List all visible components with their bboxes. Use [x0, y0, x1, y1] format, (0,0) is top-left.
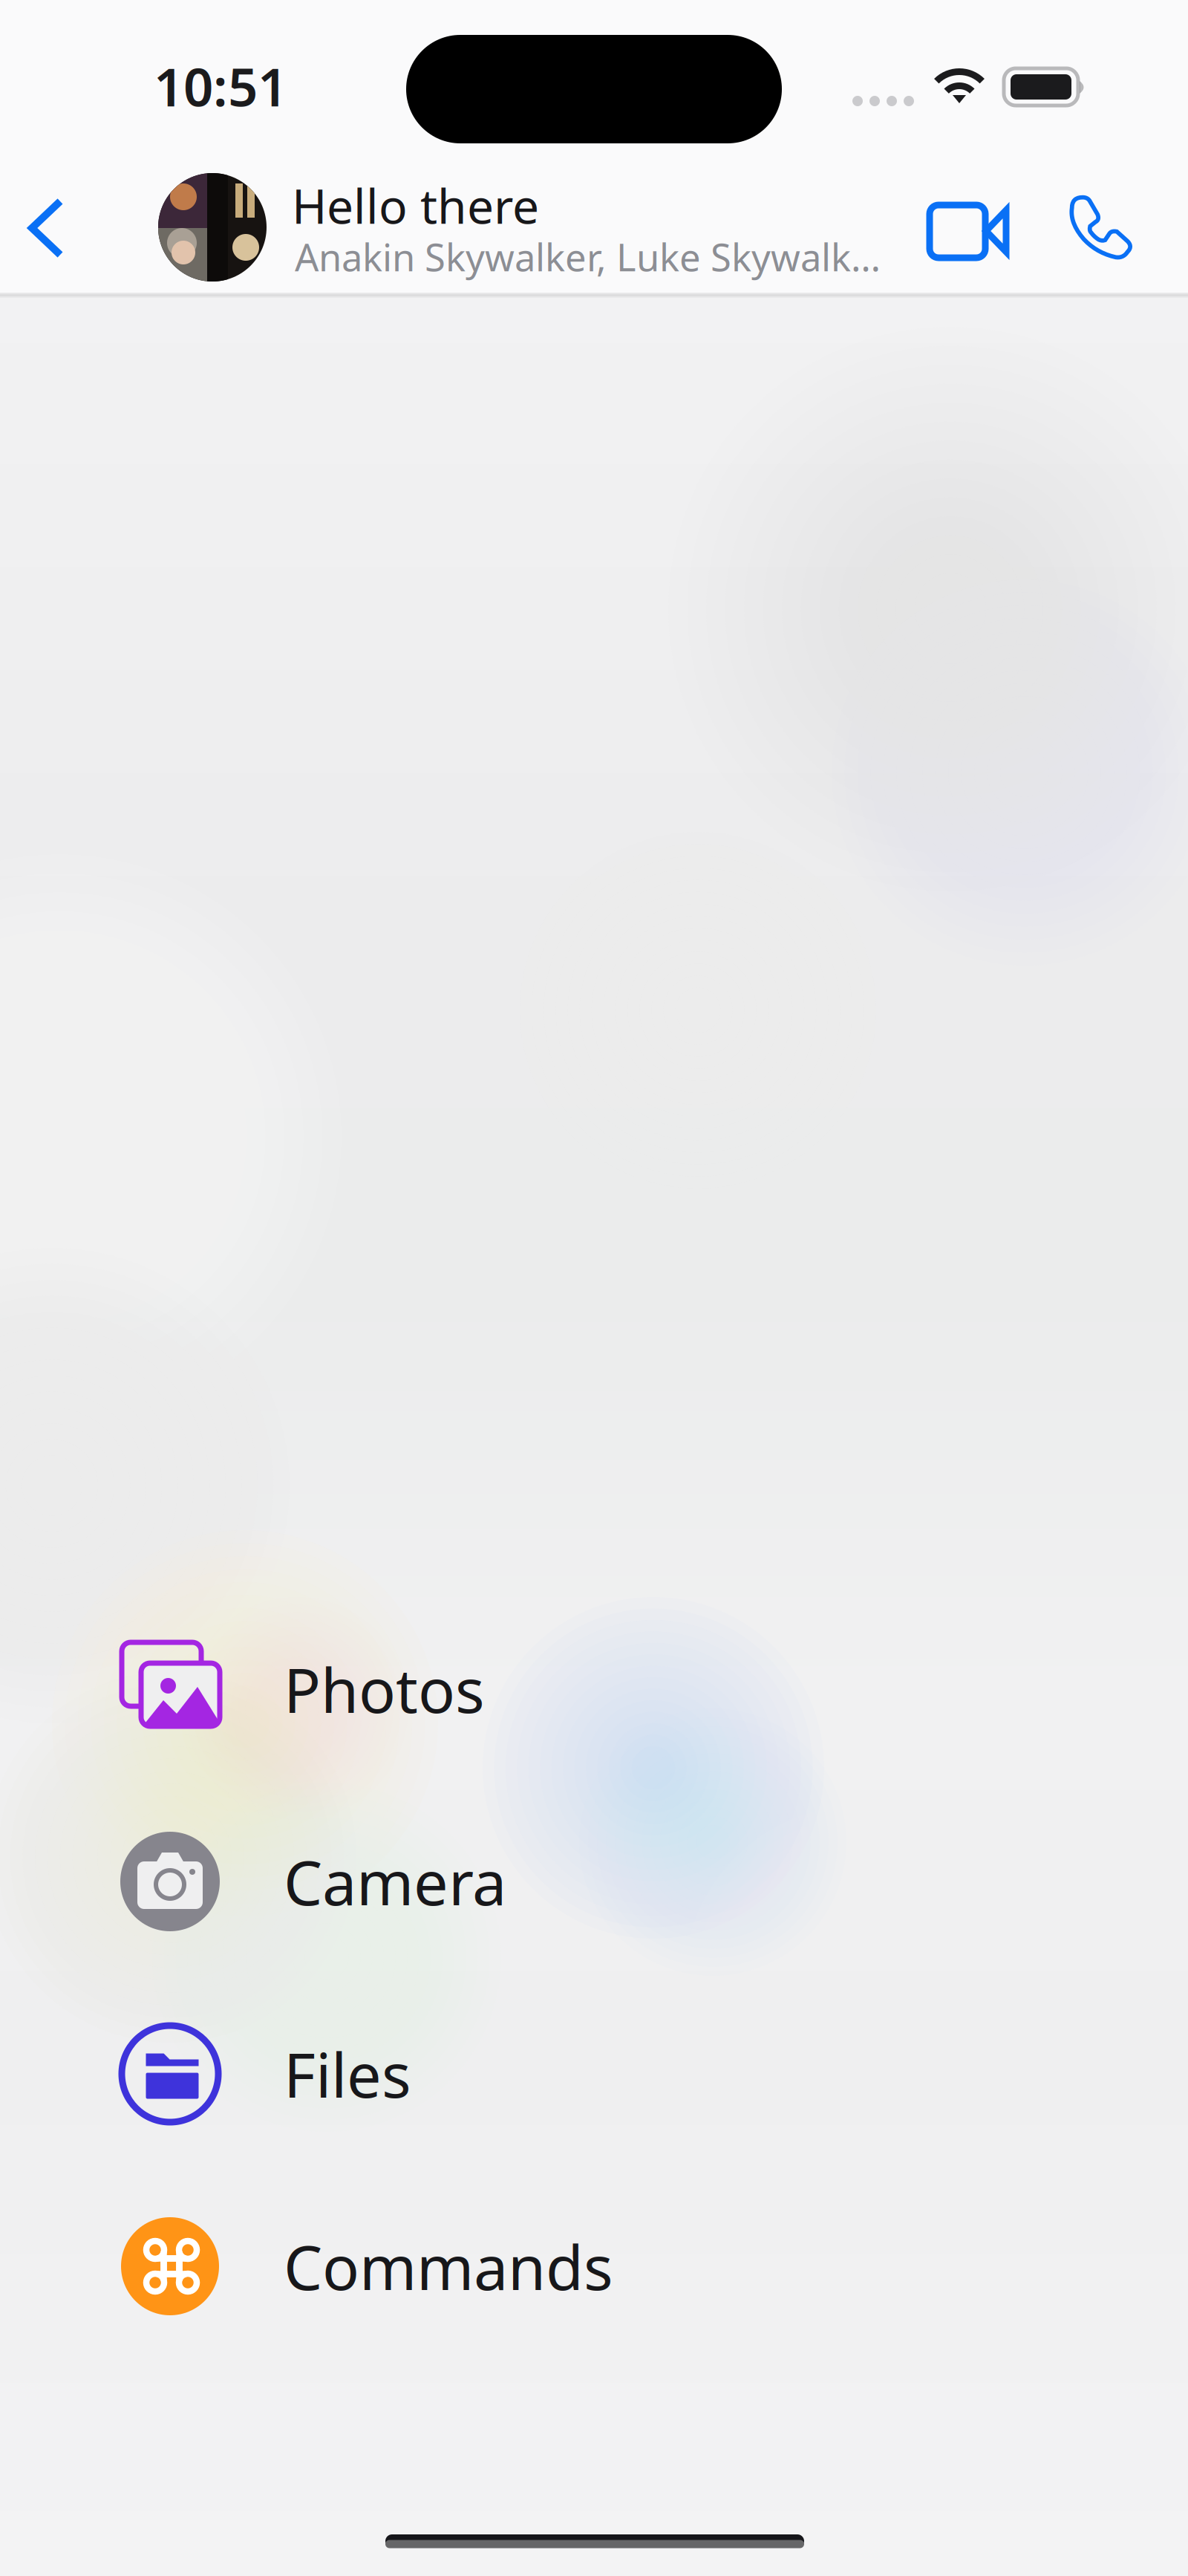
button[interactable]: Back	[27, 197, 65, 259]
staticText: Photos	[284, 1648, 485, 1730]
button[interactable]: Video call	[930, 195, 1048, 270]
staticText: Camera	[284, 1841, 506, 1922]
staticText: Anakin Skywalker, Luke Skywalk…	[295, 232, 881, 272]
button[interactable]: Audio call	[1068, 186, 1172, 268]
button[interactable]: Files	[0, 1981, 1188, 2167]
button[interactable]: Photos	[0, 1596, 1188, 1782]
staticText: Files	[284, 2033, 411, 2115]
staticText: Hello there	[292, 174, 539, 218]
button[interactable]: Commands	[0, 2173, 1188, 2359]
staticText: Commands	[284, 2225, 613, 2307]
staticText: 10:51	[154, 51, 287, 97]
button[interactable]: Camera	[0, 1789, 1188, 1974]
